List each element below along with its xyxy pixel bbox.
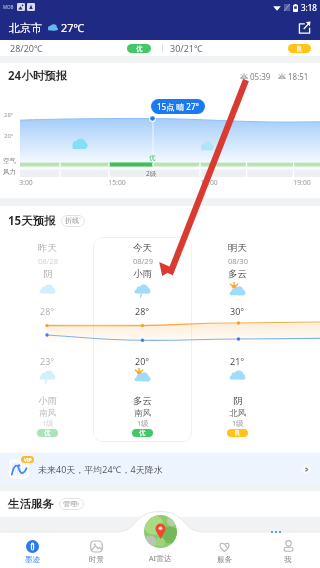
staticText: 昨天 xyxy=(38,242,57,254)
staticText: 空气 xyxy=(3,157,16,165)
staticText: MOB xyxy=(3,4,14,10)
staticText: 管理› xyxy=(63,499,80,509)
staticText: 28° xyxy=(135,305,150,317)
staticText: 南风 xyxy=(39,408,56,419)
staticText: 08/30 xyxy=(228,256,248,266)
button[interactable]: 墨迹 xyxy=(10,540,54,568)
staticText: 3:18 xyxy=(301,2,317,13)
staticText: 3:00 xyxy=(6,178,46,187)
staticText: 阴 xyxy=(43,268,53,280)
staticText: 生活服务 xyxy=(8,497,54,511)
staticText: 时景 xyxy=(89,555,104,564)
staticText: 风力 xyxy=(3,168,16,176)
staticText: 良 xyxy=(234,429,241,437)
staticText: 30/21℃ xyxy=(170,42,203,54)
staticText: 21° xyxy=(230,355,245,367)
staticText: 多云 xyxy=(228,268,247,280)
staticText: 17:00 xyxy=(189,178,229,187)
staticText: VIP xyxy=(24,457,32,463)
button[interactable]: 明天 xyxy=(190,237,285,442)
staticText: 北京市 xyxy=(9,21,42,35)
staticText: 小雨 xyxy=(38,395,57,407)
staticText: 15:00 xyxy=(97,178,137,187)
staticText: 05:39 xyxy=(250,71,271,82)
staticText: 未来40天，平均24℃，4天降水 xyxy=(38,463,163,475)
staticText: 明天 xyxy=(228,242,247,254)
staticText: 小雨 xyxy=(133,268,152,280)
staticText: 墨迹 xyxy=(25,555,40,564)
staticText: 08/29 xyxy=(133,256,153,266)
staticText: 折线˅ xyxy=(65,216,81,226)
staticText: 今天 xyxy=(133,242,152,254)
staticText: 30° xyxy=(230,305,245,317)
staticText: 阴 xyxy=(233,395,243,407)
staticText: 28/20℃ xyxy=(10,42,43,54)
staticText: 2级 xyxy=(146,169,157,178)
staticText: 24小时预报 xyxy=(8,68,68,84)
staticText: 20° xyxy=(4,132,14,140)
button[interactable]: 管理› xyxy=(59,498,84,510)
staticText: 18:51 xyxy=(288,71,309,82)
staticText: 1级 xyxy=(137,418,149,428)
button[interactable]: 时景 xyxy=(74,540,118,568)
staticText: 优 xyxy=(139,429,146,437)
staticText: 08/28 xyxy=(38,256,58,266)
staticText: 28° xyxy=(40,305,55,317)
button[interactable]: 折线˅ xyxy=(61,215,85,227)
staticText: 南风 xyxy=(134,408,151,419)
staticText: 28° xyxy=(4,111,14,119)
staticText: 北风 xyxy=(229,408,246,419)
staticText: 服务 xyxy=(217,555,232,564)
staticText: 19:00 xyxy=(282,178,320,187)
staticText: 优 xyxy=(44,429,51,437)
button[interactable]: 服务 xyxy=(202,540,246,568)
staticText: 27℃ xyxy=(61,20,85,35)
staticText: AI雷达 xyxy=(140,553,180,563)
staticText: 1级 xyxy=(42,418,54,428)
button[interactable]: 昨天 xyxy=(0,237,95,442)
staticText: 15点 晴 27° xyxy=(157,101,199,112)
staticText: 23° xyxy=(40,355,55,367)
button[interactable]: VIP xyxy=(0,453,320,484)
staticText: 15天预报 xyxy=(8,213,56,229)
button[interactable]: AI雷达 xyxy=(141,512,179,550)
staticText: 优 xyxy=(136,45,143,53)
staticText: 我 xyxy=(284,555,292,564)
staticText: 20° xyxy=(135,355,150,367)
staticText: 多云 xyxy=(133,395,152,407)
button[interactable]: 我 xyxy=(266,540,310,568)
staticText: 1级 xyxy=(232,418,244,428)
button[interactable]: Share xyxy=(297,20,312,35)
staticText: 优 xyxy=(149,154,156,162)
button[interactable]: 今天 xyxy=(95,237,190,442)
staticText: 良 xyxy=(296,45,303,53)
